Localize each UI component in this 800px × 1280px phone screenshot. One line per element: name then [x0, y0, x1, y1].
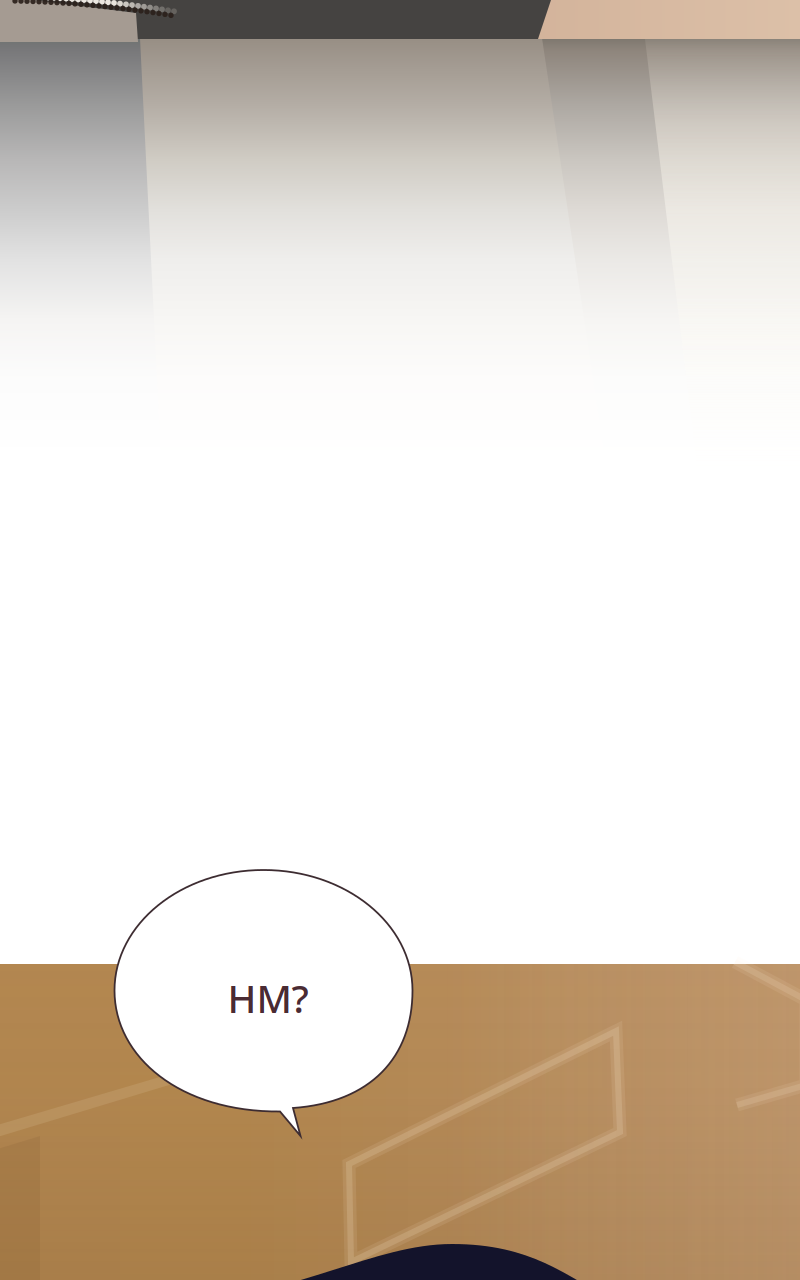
staticText: HM? — [227, 972, 308, 1024]
